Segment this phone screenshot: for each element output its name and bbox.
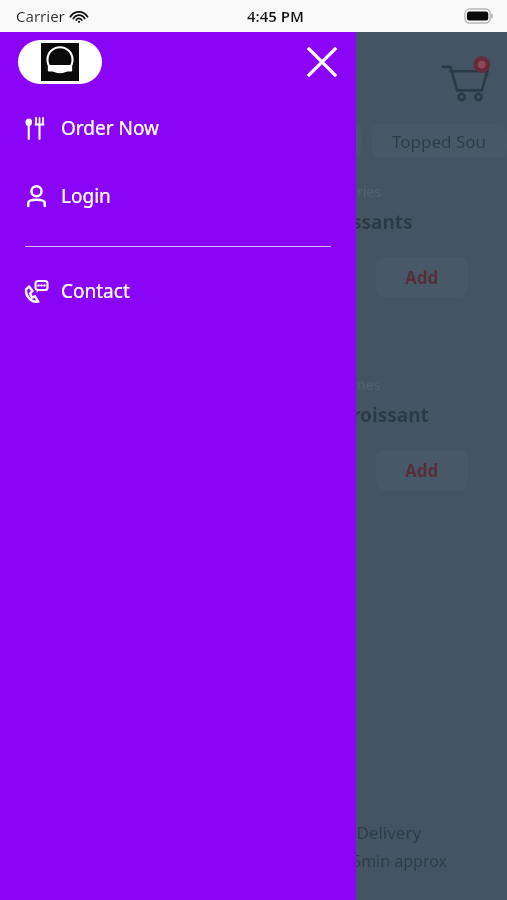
staticText: Order Now: [61, 115, 159, 141]
button[interactable]: Topped Sou: [372, 124, 507, 158]
staticText: Topped Sou: [392, 130, 487, 153]
button[interactable]: [0, 0, 507, 900]
button[interactable]: Cart: [437, 50, 493, 106]
staticText: 4:45 PM: [247, 6, 304, 26]
staticText: Add: [405, 266, 439, 289]
staticText: tnes: [352, 375, 381, 394]
button[interactable]: Contact: [0, 269, 356, 313]
button[interactable]: Add: [376, 450, 468, 490]
button[interactable]: Add: [376, 257, 468, 297]
staticText: Login: [61, 183, 111, 209]
staticText: Carrier: [16, 6, 65, 26]
staticText: tries: [352, 182, 382, 201]
staticText: ssants: [352, 209, 413, 235]
button[interactable]: Order Now: [0, 106, 356, 150]
staticText: roissant: [352, 402, 429, 428]
button[interactable]: [306, 124, 362, 158]
staticText: 5min approx: [352, 850, 448, 872]
button[interactable]: [18, 40, 102, 84]
button[interactable]: Close menu: [296, 36, 348, 88]
staticText: Delivery: [352, 821, 422, 844]
staticText: Add: [405, 459, 439, 482]
staticText: Contact: [61, 278, 130, 304]
button[interactable]: Login: [0, 174, 356, 218]
